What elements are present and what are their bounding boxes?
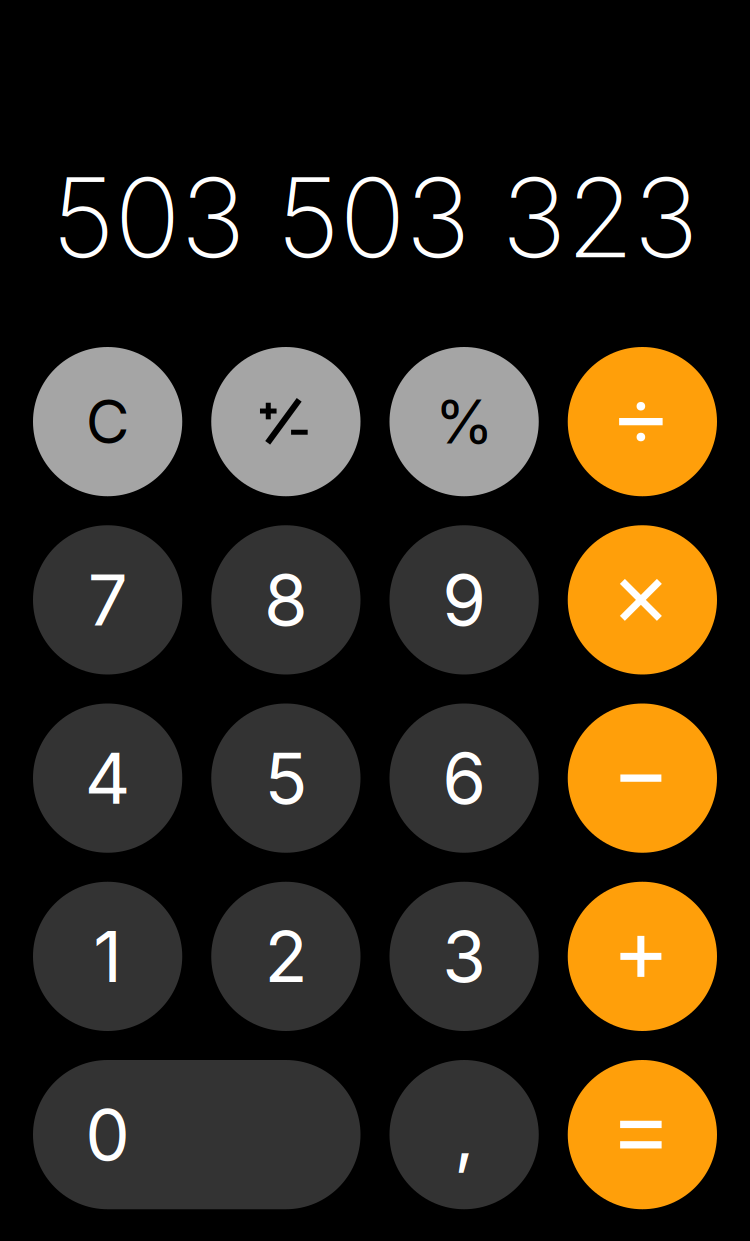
button[interactable]: 4 — [33, 703, 182, 853]
staticText: 9 — [442, 557, 486, 643]
button[interactable]: 6 — [389, 703, 539, 853]
button[interactable]: 3 — [389, 882, 539, 1031]
button[interactable]: 2 — [211, 882, 360, 1031]
staticText: 6 — [442, 735, 486, 821]
button[interactable]: Toggle sign — [211, 347, 360, 496]
button[interactable]: 7 — [33, 525, 182, 674]
button[interactable]: Multiply — [568, 525, 717, 674]
button[interactable]: Subtract — [568, 703, 717, 853]
button[interactable]: % — [389, 347, 539, 496]
staticText: % — [435, 385, 494, 458]
button[interactable]: Equals — [568, 1060, 717, 1209]
staticText: 5 — [264, 735, 307, 821]
button[interactable]: 0 — [33, 1060, 360, 1209]
button[interactable]: 1 — [33, 882, 182, 1031]
button[interactable]: , — [389, 1060, 539, 1209]
button[interactable]: C — [33, 347, 182, 496]
staticText: 4 — [85, 735, 131, 821]
button[interactable]: Add — [568, 882, 717, 1031]
staticText: 7 — [88, 557, 128, 643]
staticText: C — [86, 385, 130, 458]
button[interactable]: 5 — [211, 703, 360, 853]
button[interactable]: Divide — [568, 347, 717, 496]
button[interactable]: 9 — [389, 525, 539, 674]
staticText: 1 — [93, 914, 122, 999]
staticText: 0 — [85, 1092, 130, 1177]
staticText: , — [454, 1092, 474, 1177]
staticText: 8 — [264, 557, 308, 643]
staticText: 2 — [264, 914, 307, 999]
staticText: 3 — [442, 914, 486, 999]
staticText: 503 503 323 — [51, 151, 698, 284]
button[interactable]: 8 — [211, 525, 360, 674]
